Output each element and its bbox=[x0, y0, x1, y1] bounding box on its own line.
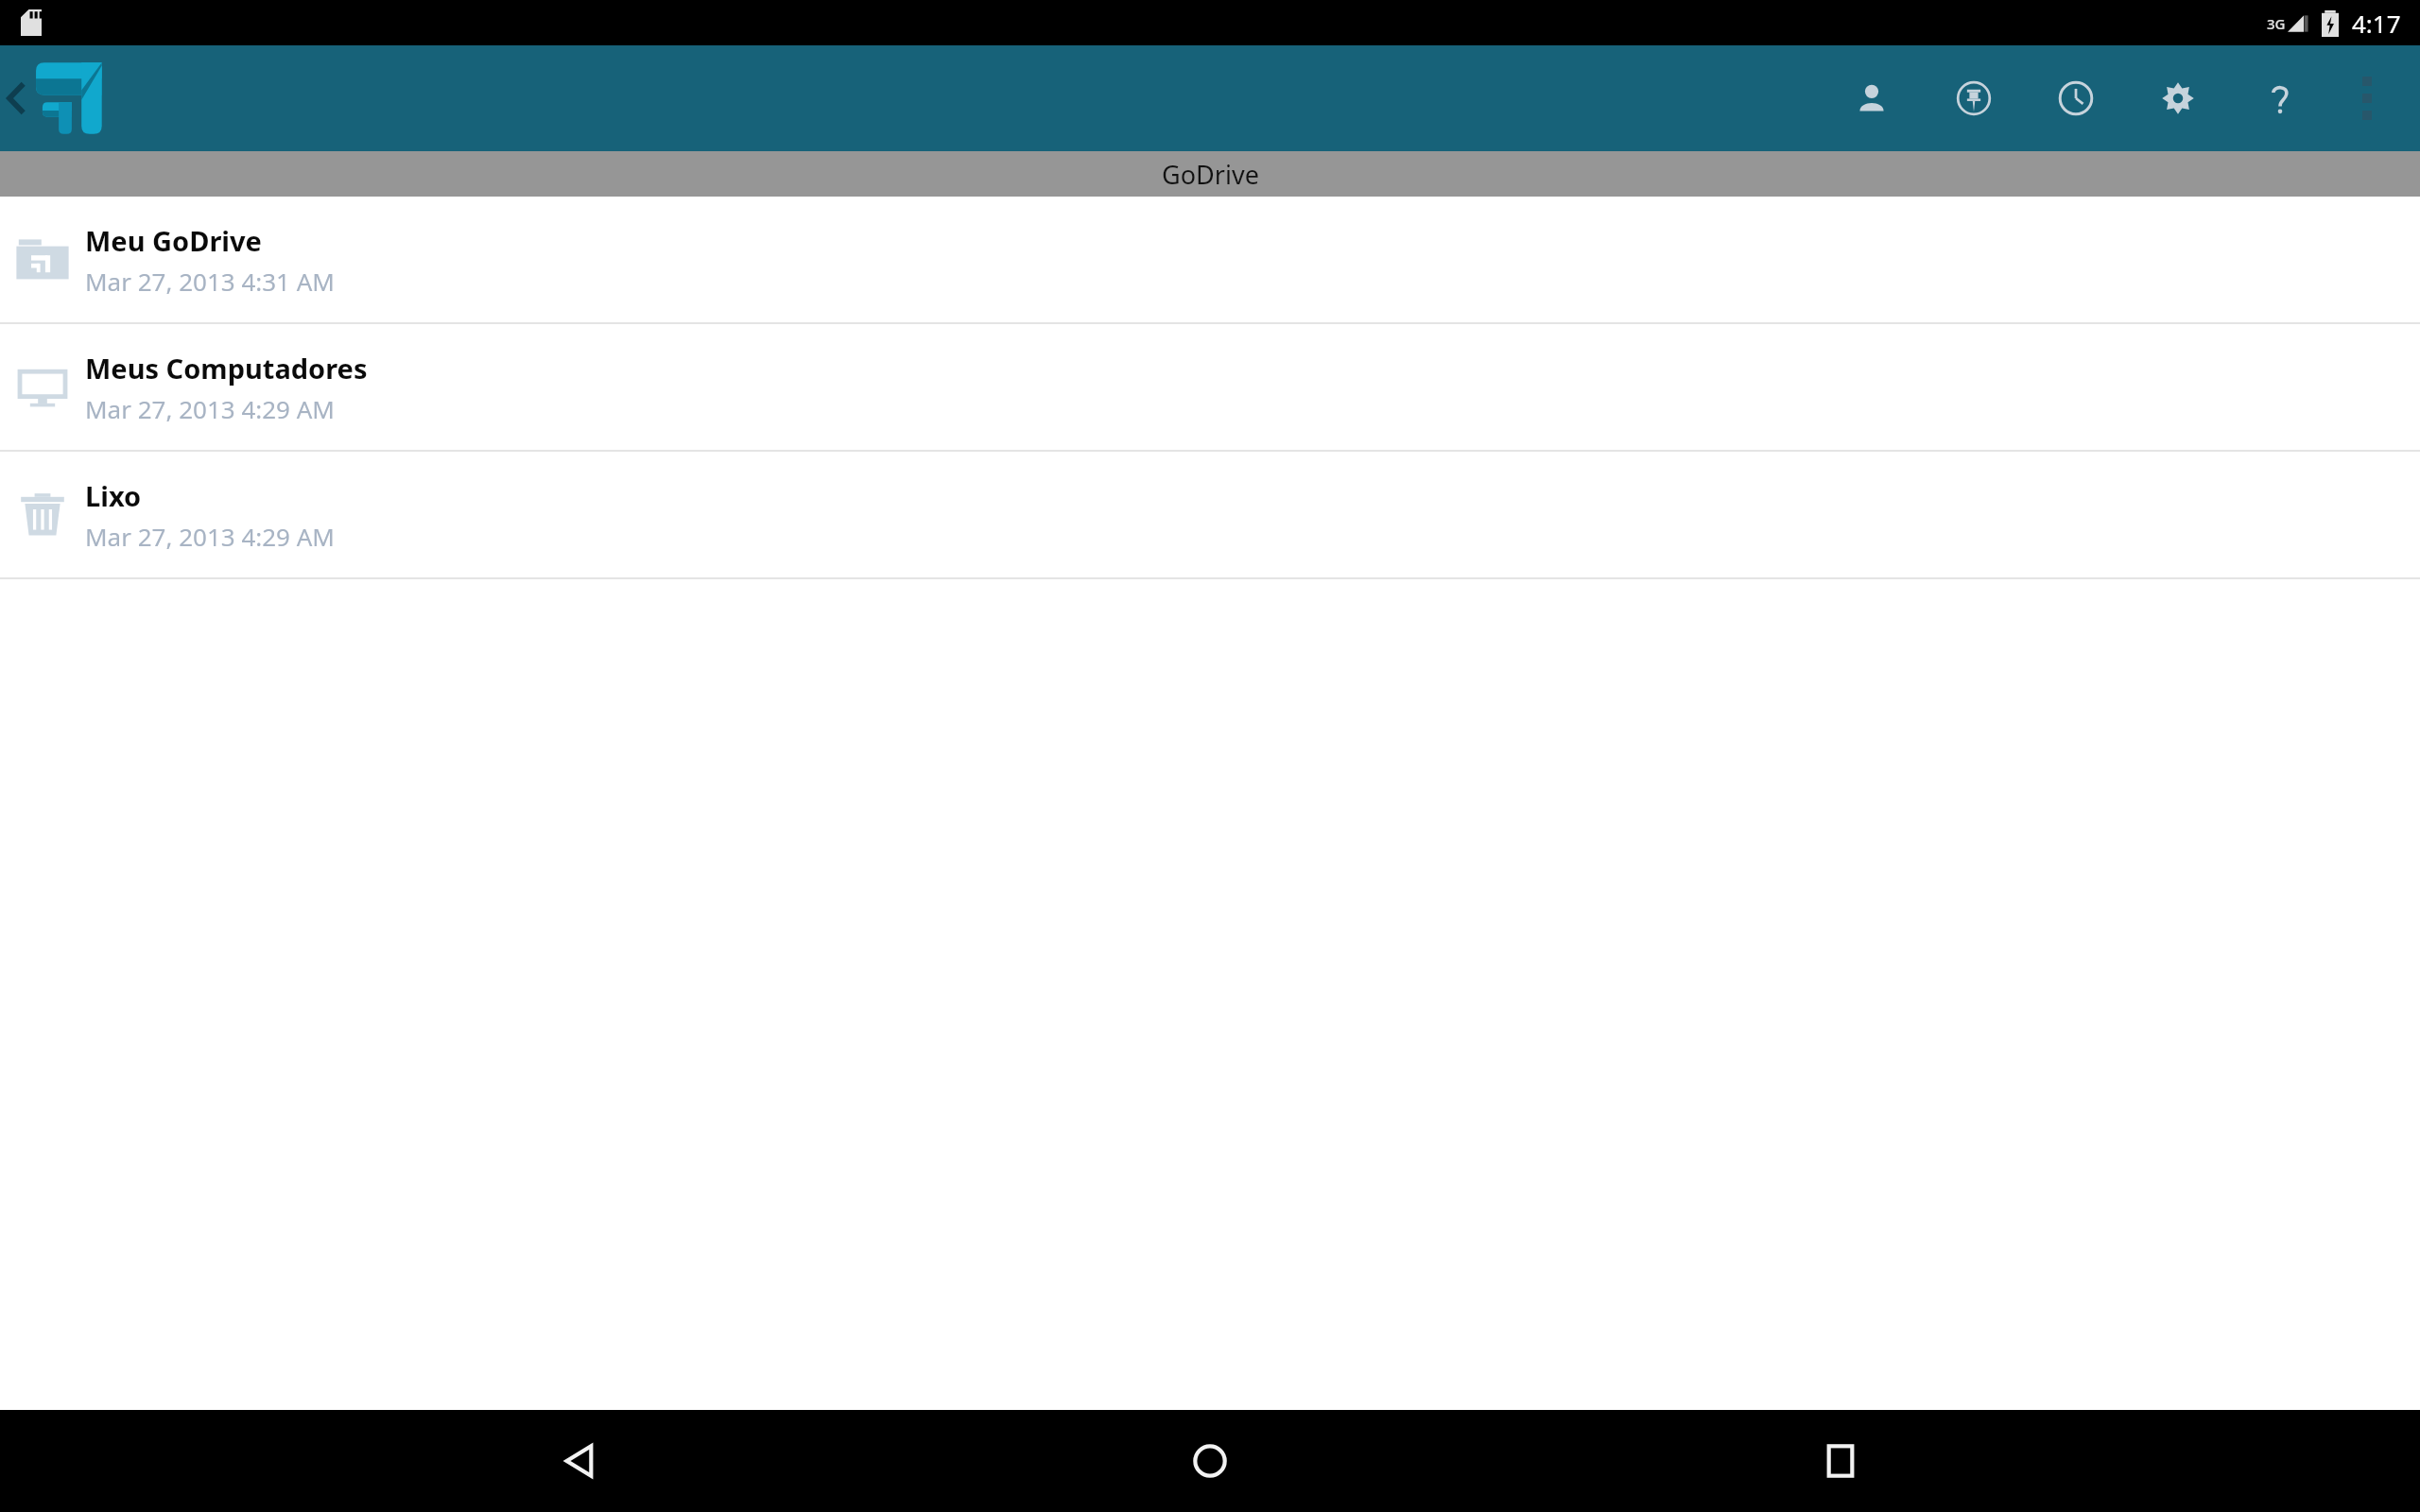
button[interactable]: Back bbox=[0, 45, 32, 151]
staticText: Mar 27, 2013 4:29 AM bbox=[85, 520, 335, 553]
button[interactable]: Meu GoDrive bbox=[0, 197, 2420, 322]
staticText: Mar 27, 2013 4:31 AM bbox=[85, 265, 335, 298]
button[interactable]: Back bbox=[528, 1410, 631, 1512]
button[interactable]: Recents bbox=[1789, 1410, 1892, 1512]
button[interactable]: Settings bbox=[2152, 45, 2204, 151]
staticText: Meu GoDrive bbox=[85, 222, 262, 259]
staticText: Mar 27, 2013 4:29 AM bbox=[85, 392, 335, 425]
button[interactable]: Recent bbox=[2049, 45, 2102, 151]
button[interactable]: Help bbox=[2254, 45, 2307, 151]
button[interactable]: Pinned bbox=[1947, 45, 2000, 151]
button[interactable]: App logo bbox=[25, 58, 106, 139]
staticText: Meus Computadores bbox=[85, 350, 368, 387]
button[interactable]: GoDrive bbox=[0, 151, 2420, 197]
button[interactable]: Lixo bbox=[0, 452, 2420, 577]
button[interactable]: More options bbox=[2350, 45, 2384, 151]
staticText: 4:17 bbox=[2352, 7, 2401, 40]
button[interactable]: Meus Computadores bbox=[0, 324, 2420, 450]
staticText: Lixo bbox=[85, 477, 142, 514]
button[interactable]: Account bbox=[1845, 45, 1898, 151]
button[interactable]: Home bbox=[1159, 1410, 1261, 1512]
staticText: 3G bbox=[2267, 14, 2286, 33]
staticText: GoDrive bbox=[1162, 157, 1259, 192]
